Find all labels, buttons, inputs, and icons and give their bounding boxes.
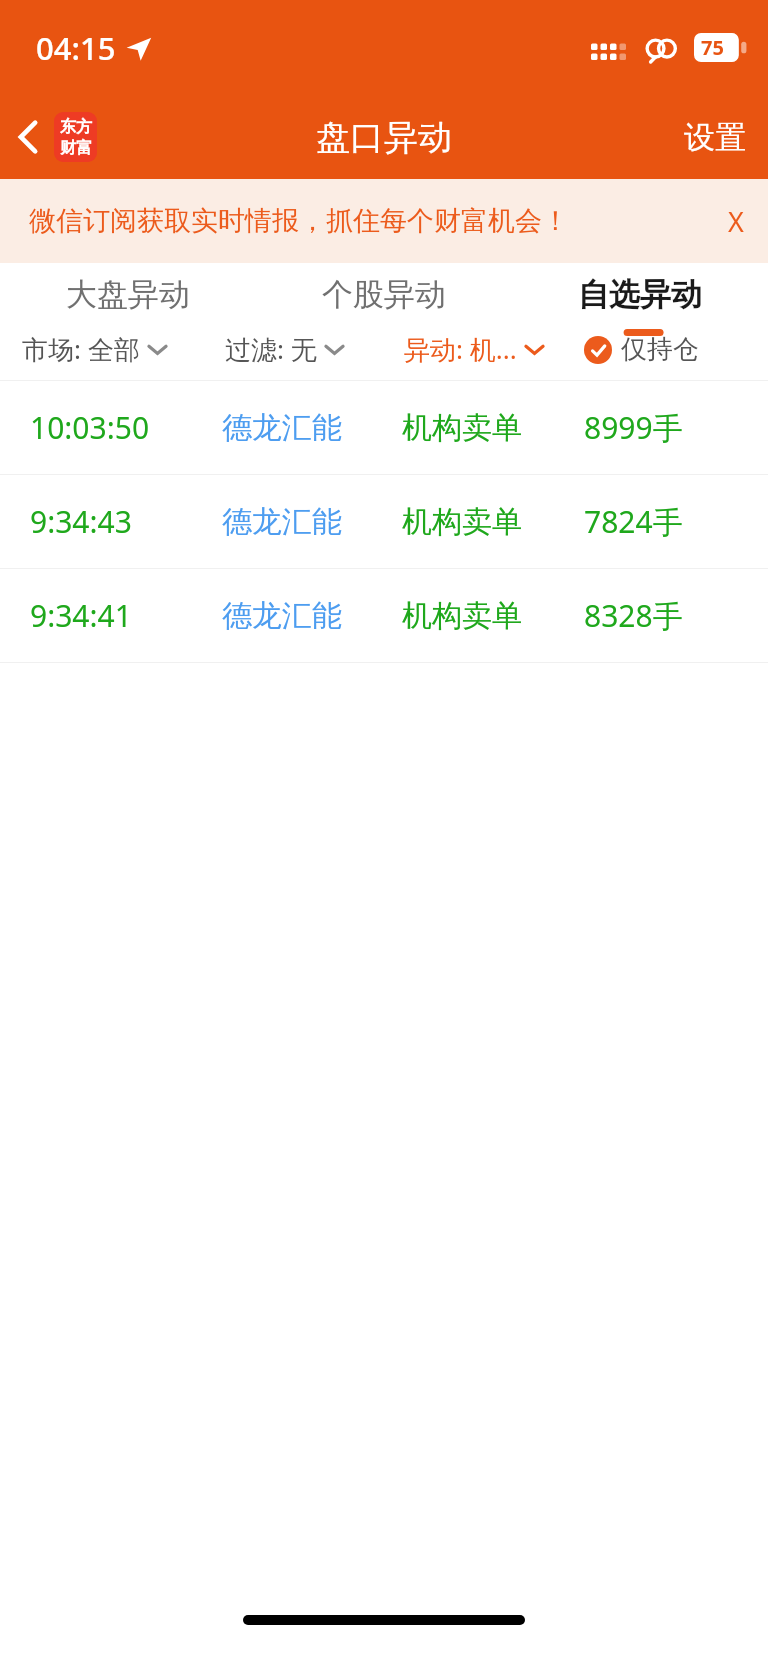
staticText: 财富 bbox=[60, 138, 92, 158]
staticText: 个股异动 bbox=[322, 275, 446, 314]
staticText: 过滤: 无 bbox=[225, 331, 317, 367]
button[interactable]: 大盘异动 bbox=[0, 263, 256, 325]
staticText: 仅持仓 bbox=[621, 333, 699, 366]
button[interactable]: 个股异动 bbox=[256, 263, 512, 325]
staticText: 德龙汇能 bbox=[222, 503, 342, 541]
button[interactable]: 9:34:41 bbox=[0, 569, 768, 662]
staticText: 盘口异动 bbox=[316, 116, 452, 159]
button[interactable]: 设置 bbox=[662, 106, 768, 169]
button[interactable]: 自选异动 bbox=[512, 263, 768, 325]
staticText: 10:03:50 bbox=[30, 407, 150, 448]
staticText: 8999手 bbox=[584, 407, 683, 448]
staticText: 自选异动 bbox=[578, 275, 702, 314]
button[interactable]: Back bbox=[0, 104, 107, 170]
button[interactable]: Close banner bbox=[704, 187, 768, 256]
staticText: 异动: 机... bbox=[404, 331, 517, 367]
staticText: 微信订阅获取实时情报，抓住每个财富机会！ bbox=[29, 204, 569, 238]
button[interactable]: 微信订阅获取实时情报，抓住每个财富机会！ bbox=[0, 179, 768, 263]
staticText: 9:34:41 bbox=[30, 595, 132, 636]
staticText: 德龙汇能 bbox=[222, 409, 342, 447]
staticText: 设置 bbox=[684, 118, 746, 157]
button[interactable]: 过滤: 无 bbox=[225, 326, 344, 372]
button[interactable]: 9:34:43 bbox=[0, 475, 768, 568]
staticText: 9:34:43 bbox=[30, 501, 132, 542]
staticText: 8328手 bbox=[584, 595, 683, 636]
staticText: 7824手 bbox=[584, 501, 683, 542]
button[interactable]: 市场: 全部 bbox=[22, 326, 167, 372]
button[interactable]: 仅持仓 bbox=[584, 328, 699, 371]
button[interactable]: 异动: 机... bbox=[404, 326, 544, 372]
staticText: 04:15 bbox=[36, 27, 116, 69]
staticText: X bbox=[728, 203, 744, 240]
staticText: 机构卖单 bbox=[402, 597, 522, 635]
staticText: 东方 bbox=[60, 117, 92, 137]
staticText: 德龙汇能 bbox=[222, 597, 342, 635]
button[interactable]: 10:03:50 bbox=[0, 381, 768, 474]
staticText: 机构卖单 bbox=[402, 503, 522, 541]
staticText: 机构卖单 bbox=[402, 409, 522, 447]
staticText: 大盘异动 bbox=[66, 275, 190, 314]
staticText: 市场: 全部 bbox=[22, 331, 140, 367]
staticText: 75 bbox=[701, 34, 724, 61]
